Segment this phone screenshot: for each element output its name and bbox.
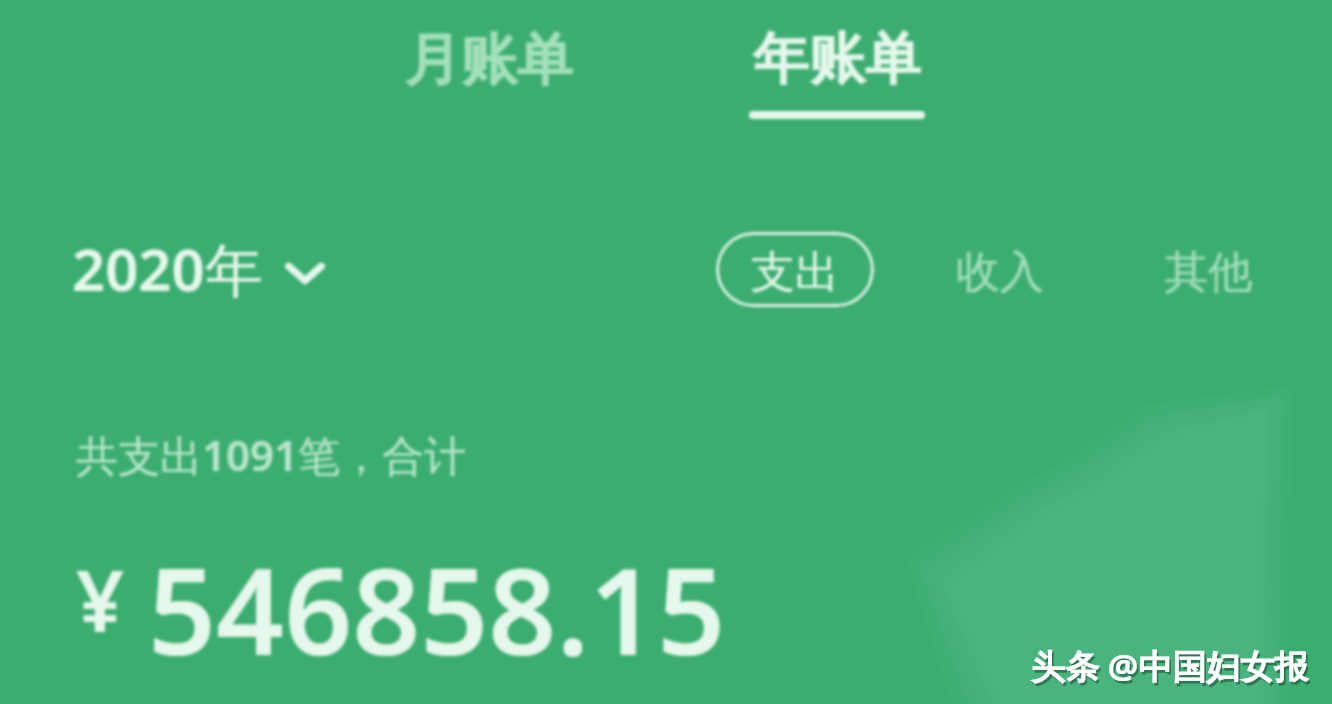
button[interactable]: 其他	[1146, 232, 1270, 307]
staticText: 头条 @中国妇女报	[1033, 646, 1311, 692]
button[interactable]: 月账单	[399, 19, 579, 102]
staticText: 收入	[956, 245, 1044, 300]
button[interactable]: 收入	[938, 232, 1062, 307]
staticText: 其他	[1164, 245, 1252, 300]
staticText: 头条 @中国妇女报	[1031, 643, 1309, 689]
staticText: 2020年	[72, 229, 263, 308]
staticText: 支出	[751, 245, 839, 300]
staticText: 年账单	[753, 24, 921, 95]
button[interactable]: 年账单	[749, 24, 925, 103]
staticText: 546858.15	[148, 528, 726, 690]
button[interactable]: Select year, 2020	[72, 229, 311, 308]
staticText: ¥	[76, 542, 125, 656]
staticText: 月账单	[405, 25, 573, 96]
button[interactable]: 支出	[716, 232, 874, 307]
staticText: 共支出1091笔，合计	[76, 426, 467, 483]
